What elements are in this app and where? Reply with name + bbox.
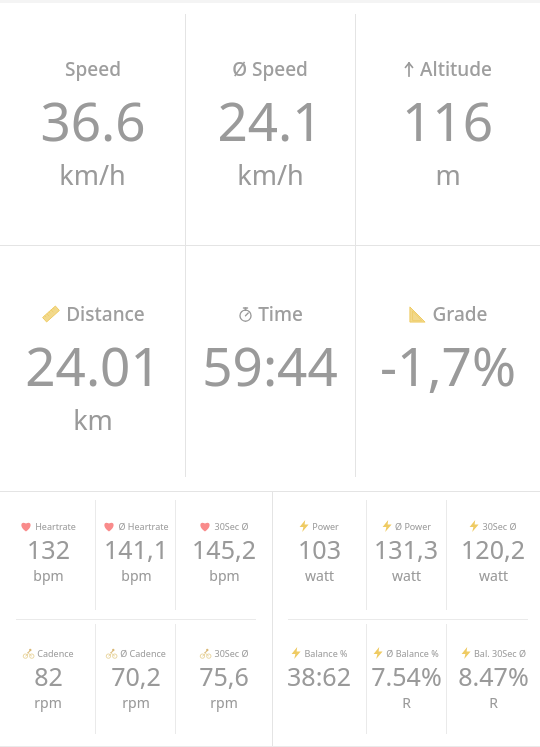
button[interactable]: 30Sec Ø: [446, 492, 540, 619]
staticText: 24.1: [217, 84, 323, 156]
button[interactable]: 30Sec Ø: [176, 619, 272, 747]
staticText: 75,6: [199, 659, 249, 693]
button[interactable]: Power: [272, 492, 366, 619]
staticText: bpm: [121, 566, 152, 585]
staticText: rpm: [34, 693, 62, 712]
button[interactable]: Ø Cadence: [96, 619, 176, 747]
staticText: watt: [392, 566, 421, 585]
staticText: watt: [479, 566, 508, 585]
button[interactable]: Speed: [0, 0, 185, 245]
staticText: 141,1: [104, 532, 168, 566]
button[interactable]: Distance: [0, 245, 185, 492]
staticText: Power: [312, 520, 339, 532]
staticText: Ø Heartrate: [118, 520, 169, 532]
staticText: R: [489, 693, 498, 712]
staticText: bpm: [209, 566, 240, 585]
staticText: 145,2: [192, 532, 256, 566]
staticText: 30Sec Ø: [214, 647, 249, 659]
staticText: Grade: [432, 301, 488, 327]
staticText: 82: [34, 659, 63, 693]
staticText: 30Sec Ø: [214, 520, 249, 532]
staticText: Ø Speed: [232, 56, 308, 82]
button[interactable]: Ø Balance %: [366, 619, 446, 747]
button[interactable]: Grade: [355, 245, 540, 492]
staticText: Ø Balance %: [386, 647, 439, 659]
staticText: 24.01: [25, 329, 161, 401]
staticText: Time: [258, 301, 303, 327]
staticText: 70,2: [111, 659, 161, 693]
button[interactable]: Cadence: [0, 619, 96, 747]
staticText: Balance %: [304, 647, 348, 659]
staticText: 30Sec Ø: [482, 520, 517, 532]
staticText: 120,2: [461, 532, 525, 566]
staticText: watt: [305, 566, 334, 585]
staticText: rpm: [122, 693, 150, 712]
button[interactable]: Time: [185, 245, 355, 492]
staticText: 59:44: [202, 329, 338, 401]
staticText: Heartrate: [35, 520, 76, 532]
button[interactable]: Ø Power: [366, 492, 446, 619]
staticText: 132: [27, 532, 70, 566]
staticText: Ø Cadence: [120, 647, 166, 659]
button[interactable]: 30Sec Ø: [176, 492, 272, 619]
staticText: Distance: [66, 301, 145, 327]
button[interactable]: Ø Heartrate: [96, 492, 176, 619]
staticText: -1,7%: [380, 329, 516, 401]
staticText: 38:62: [287, 659, 351, 693]
button[interactable]: Heartrate: [0, 492, 96, 619]
button[interactable]: Bal. 30Sec Ø: [446, 619, 540, 747]
staticText: 7.54%: [371, 659, 442, 693]
staticText: m: [435, 156, 461, 193]
staticText: Cadence: [37, 647, 74, 659]
button[interactable]: Altitude: [355, 0, 540, 245]
staticText: bpm: [33, 566, 64, 585]
staticText: Bal. 30Sec Ø: [474, 647, 526, 659]
staticText: 116: [402, 84, 493, 156]
staticText: km/h: [59, 156, 126, 193]
staticText: 103: [298, 532, 341, 566]
staticText: 131,3: [374, 532, 438, 566]
staticText: 8.47%: [458, 659, 529, 693]
staticText: R: [402, 693, 411, 712]
staticText: Altitude: [420, 56, 492, 82]
button[interactable]: Balance %: [272, 619, 366, 747]
staticText: rpm: [210, 693, 238, 712]
staticText: Ø Power: [395, 520, 431, 532]
staticText: km/h: [237, 156, 304, 193]
staticText: km: [73, 401, 113, 438]
staticText: Speed: [65, 56, 121, 82]
staticText: 36.6: [40, 84, 146, 156]
button[interactable]: Ø Speed: [185, 0, 355, 245]
